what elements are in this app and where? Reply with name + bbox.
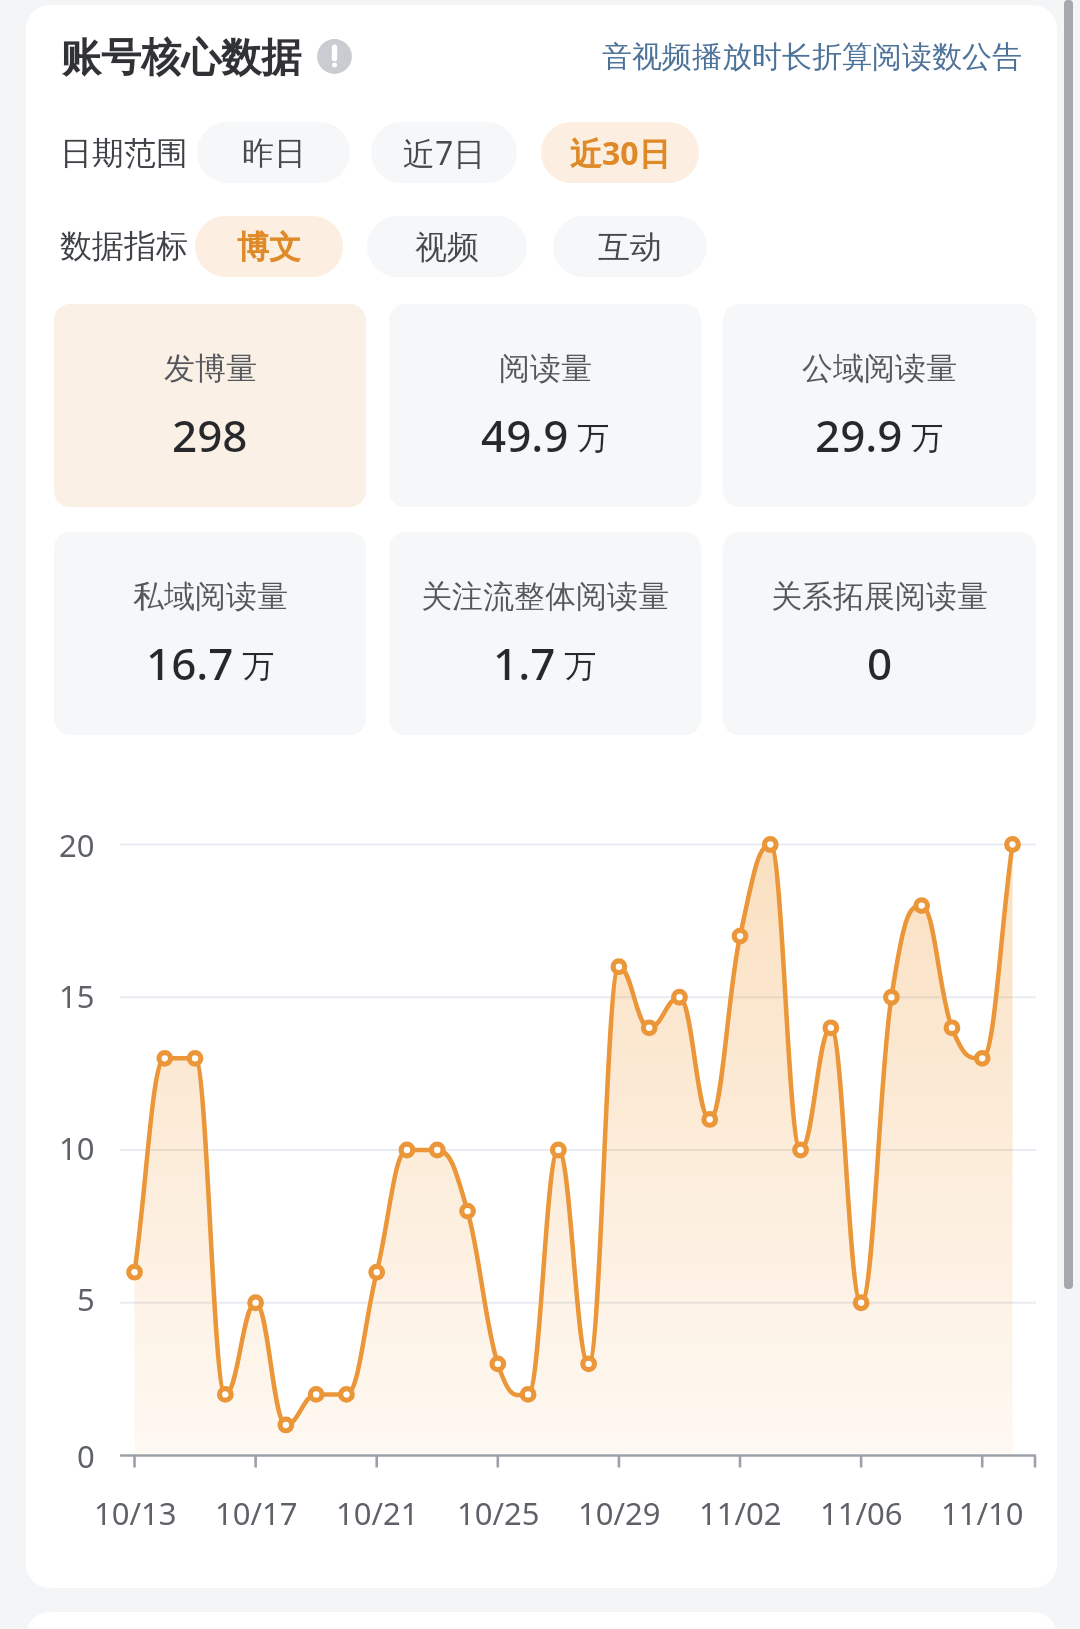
staticText: 万 xyxy=(556,643,597,687)
staticText: 49.9 xyxy=(481,405,569,465)
staticText: 11/06 xyxy=(820,1492,903,1534)
staticText: 10/13 xyxy=(94,1492,177,1534)
button[interactable] xyxy=(317,39,352,74)
button[interactable]: 视频 xyxy=(367,216,527,277)
staticText: 11/10 xyxy=(941,1492,1024,1534)
staticText: 0 xyxy=(77,1435,95,1477)
button[interactable]: 音视频播放时长折算阅读数公告 xyxy=(597,32,1027,82)
staticText: 29.9 xyxy=(815,405,903,465)
staticText: 10 xyxy=(59,1127,95,1169)
staticText: 发博量 xyxy=(164,349,257,388)
staticText: 账号核心数据 xyxy=(61,32,301,82)
staticText: 万 xyxy=(234,643,275,687)
staticText: 1.7 xyxy=(493,633,556,693)
staticText: 博文 xyxy=(237,227,301,267)
button[interactable]: 阅读量 xyxy=(389,304,701,507)
staticText: 298 xyxy=(172,405,248,465)
button[interactable]: 昨日 xyxy=(197,122,350,183)
staticText: 11/02 xyxy=(699,1492,782,1534)
staticText: 万 xyxy=(903,415,944,459)
button[interactable]: 近7日 xyxy=(371,122,517,183)
staticText: 15 xyxy=(59,975,95,1017)
button[interactable]: 近30日 xyxy=(541,122,699,183)
button[interactable]: 私域阅读量 xyxy=(54,532,366,735)
staticText: 10/17 xyxy=(215,1492,298,1534)
staticText: 音视频播放时长折算阅读数公告 xyxy=(602,38,1022,76)
button[interactable]: 互动 xyxy=(553,216,707,277)
staticText: 关注流整体阅读量 xyxy=(421,577,669,616)
staticText: 视频 xyxy=(415,227,479,267)
staticText: 数据指标 xyxy=(60,226,188,266)
button[interactable]: 关注流整体阅读量 xyxy=(389,532,701,735)
staticText: 10/29 xyxy=(578,1492,661,1534)
staticText: 5 xyxy=(77,1278,95,1320)
staticText: 互动 xyxy=(598,227,662,267)
staticText: 16.7 xyxy=(146,633,234,693)
button[interactable]: 发博量 xyxy=(54,304,366,507)
staticText: 日期范围 xyxy=(60,133,188,173)
staticText: 近30日 xyxy=(570,131,671,175)
staticText: 万 xyxy=(569,415,610,459)
button[interactable]: 公域阅读量 xyxy=(723,304,1036,507)
staticText: 20 xyxy=(59,824,95,866)
staticText: 10/21 xyxy=(336,1492,419,1534)
staticText: 0 xyxy=(867,633,893,693)
button[interactable]: 关系拓展阅读量 xyxy=(723,532,1036,735)
staticText: 关系拓展阅读量 xyxy=(771,577,988,616)
staticText: 近7日 xyxy=(403,131,486,175)
staticText: 昨日 xyxy=(242,133,306,173)
staticText: 阅读量 xyxy=(499,349,592,388)
button[interactable]: 博文 xyxy=(195,216,343,277)
staticText: 10/25 xyxy=(457,1492,540,1534)
staticText: 私域阅读量 xyxy=(133,577,288,616)
staticText: 公域阅读量 xyxy=(802,349,957,388)
